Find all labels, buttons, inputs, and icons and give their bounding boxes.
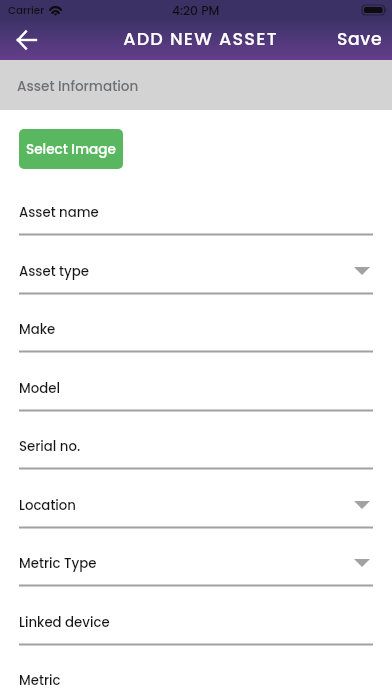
- button[interactable]: Asset name: [0, 176, 392, 235]
- button[interactable]: Metric Type: [0, 527, 392, 586]
- button[interactable]: Linked device: [0, 586, 392, 645]
- button[interactable]: Model: [0, 352, 392, 411]
- staticText: Serial no.: [19, 437, 81, 456]
- staticText: Metric Type: [19, 554, 97, 573]
- staticText: Metric: [19, 671, 61, 690]
- staticText: Linked device: [19, 613, 110, 632]
- staticText: Location: [19, 496, 76, 515]
- staticText: Asset Information: [17, 77, 139, 96]
- button[interactable]: Serial no.: [0, 410, 392, 469]
- staticText: Asset name: [19, 203, 99, 222]
- staticText: Make: [19, 320, 56, 339]
- button[interactable]: Asset type: [0, 235, 392, 294]
- staticText: 4:20 PM: [172, 2, 220, 19]
- button[interactable]: Make: [0, 293, 392, 352]
- staticText: Save: [337, 27, 383, 51]
- button[interactable]: Save: [326, 21, 392, 59]
- button[interactable]: Location: [0, 469, 392, 528]
- staticText: ADD NEW ASSET: [123, 27, 278, 52]
- staticText: Model: [19, 379, 60, 398]
- staticText: Asset type: [19, 262, 89, 281]
- button[interactable]: Select Image: [19, 129, 123, 169]
- staticText: Carrier: [8, 3, 45, 18]
- staticText: Select Image: [26, 140, 116, 159]
- button[interactable]: Metric: [0, 644, 392, 696]
- button[interactable]: Back: [6, 20, 46, 60]
